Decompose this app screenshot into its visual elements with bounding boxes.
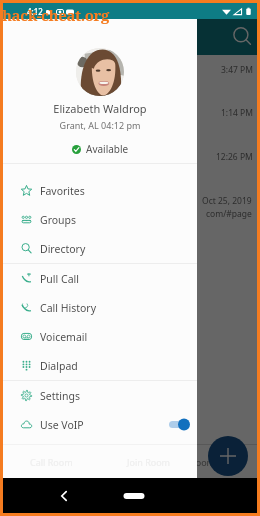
staticText: com/#page [206,208,252,220]
staticText: 3:47 PM [221,64,253,76]
button[interactable]: Call History [3,293,197,322]
staticText: Call Room [30,456,73,468]
button[interactable]: 12:26 PM [3,142,257,186]
staticText: Call History [40,301,97,315]
staticText: Settings [40,389,80,403]
staticText: 12:26 PM [216,151,253,163]
button[interactable]: New call [208,436,248,476]
staticText: Pull Call [40,272,79,286]
staticText: Call Room [45,456,88,468]
staticText: Available [86,142,129,156]
button[interactable]: Voicemail [3,322,197,351]
button[interactable]: Home [119,488,149,504]
staticText: Voicemail [40,330,88,344]
button[interactable]: Dialpad [3,351,197,380]
staticText: Grant, AL 04:12 pm [3,119,197,131]
staticText: Join Room [172,456,216,468]
button[interactable]: Oct 25, 2019 [3,186,257,242]
button[interactable]: Directory [3,234,197,263]
button[interactable]: 1:14 PM [3,98,257,142]
button[interactable]: Pull Call [3,264,197,293]
staticText: Elizabeth Waldrop [3,101,197,116]
staticText: 1:14 PM [221,107,253,119]
staticText: Directory [40,242,86,256]
button[interactable]: Settings [3,381,197,410]
button[interactable]: Back [55,487,73,505]
staticText: 4:12 [27,6,43,17]
staticText: Groups [40,213,77,227]
button[interactable]: Groups [3,205,197,234]
staticText: Dialpad [40,359,78,373]
button[interactable]: Favorites [3,176,197,205]
button[interactable]: Use VoIP [3,410,197,439]
button[interactable]: Search [231,26,253,48]
button[interactable]: Join Room [130,445,257,478]
button[interactable]: 3:47 PM [3,55,257,98]
staticText: Favorites [40,184,85,198]
staticText: Use VoIP [40,418,84,432]
staticText: hack-cheat.org [2,5,109,25]
staticText: Join Room [127,456,171,468]
staticText: Oct 25, 2019 [202,195,252,207]
